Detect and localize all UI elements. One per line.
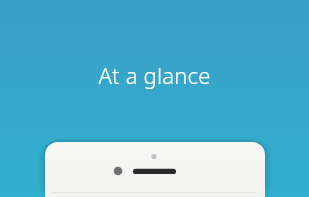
button[interactable]: Phone preview	[0, 0, 309, 197]
staticText: At a glance	[0, 60, 309, 90]
